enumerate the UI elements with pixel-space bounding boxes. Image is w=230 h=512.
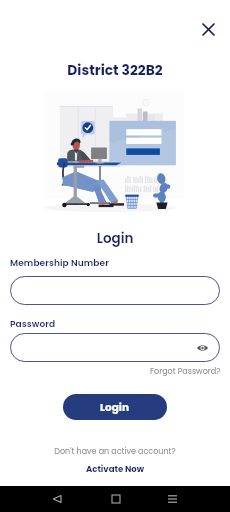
button[interactable]: Forgot Password? bbox=[150, 366, 221, 377]
staticText: Membership Number bbox=[10, 257, 109, 270]
staticText: Password bbox=[10, 318, 56, 331]
button[interactable]: Activate Now bbox=[86, 463, 145, 475]
staticText: Login bbox=[0, 229, 230, 248]
button[interactable] bbox=[10, 276, 220, 305]
button[interactable]: Show password bbox=[194, 340, 210, 356]
staticText: Login bbox=[100, 400, 130, 415]
button[interactable]: Recent apps bbox=[162, 488, 183, 509]
button[interactable]: Close bbox=[196, 17, 221, 42]
button[interactable]: Home bbox=[105, 488, 126, 509]
staticText: District 322B2 bbox=[0, 61, 230, 80]
button[interactable]: Login bbox=[63, 394, 167, 420]
button[interactable]: Show password bbox=[10, 333, 220, 362]
staticText: Don't have an active account? bbox=[0, 446, 230, 457]
button[interactable]: Back bbox=[46, 488, 67, 509]
